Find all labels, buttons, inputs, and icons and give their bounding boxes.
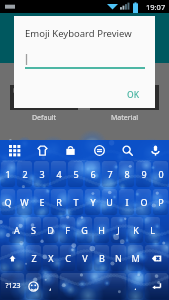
button[interactable]: C xyxy=(60,245,75,271)
staticText: Default xyxy=(32,113,57,123)
staticText: G xyxy=(81,224,88,236)
button[interactable]: Enter xyxy=(145,273,168,299)
staticText: , xyxy=(49,280,52,292)
button[interactable]: 5 xyxy=(68,161,83,187)
button[interactable]: G xyxy=(77,217,92,243)
staticText: 8 xyxy=(124,168,130,180)
button[interactable]: Z xyxy=(26,245,41,271)
staticText: H xyxy=(98,224,105,236)
button[interactable]: . xyxy=(128,273,143,299)
staticText: 7 xyxy=(107,168,113,180)
button[interactable]: N xyxy=(111,245,126,271)
staticText: 9 xyxy=(141,168,147,180)
button[interactable]: L xyxy=(145,217,160,243)
button[interactable]: ?123 xyxy=(1,273,24,299)
staticText: M xyxy=(131,252,140,264)
button[interactable]: E xyxy=(34,189,49,215)
staticText: J xyxy=(117,224,120,236)
staticText: K xyxy=(133,224,139,236)
staticText: 2 xyxy=(22,168,28,180)
button[interactable]: K xyxy=(128,217,143,243)
button[interactable]: GIF xyxy=(90,141,108,159)
staticText: 19:07 xyxy=(146,2,166,12)
button[interactable]: , xyxy=(43,273,58,299)
staticText: V xyxy=(82,252,88,264)
button[interactable]: U xyxy=(102,189,117,215)
button[interactable]: 9 xyxy=(136,161,151,187)
button[interactable]: A xyxy=(9,217,24,243)
button[interactable]: 2 xyxy=(17,161,32,187)
button[interactable]: I xyxy=(119,189,134,215)
staticText: 1 xyxy=(5,168,11,180)
button[interactable]: J xyxy=(111,217,126,243)
button[interactable]: M xyxy=(128,245,143,271)
button[interactable] xyxy=(90,85,159,110)
button[interactable]: 7 xyxy=(102,161,117,187)
button[interactable]: OK xyxy=(122,86,145,104)
button[interactable]: Store xyxy=(61,141,79,159)
button[interactable]: V xyxy=(77,245,92,271)
button[interactable]: 1 xyxy=(1,161,15,187)
staticText: 3 xyxy=(39,168,45,180)
button[interactable]: P xyxy=(153,189,168,215)
button[interactable]: Keyboard themes xyxy=(5,141,23,159)
button[interactable]: 8 xyxy=(119,161,134,187)
staticText: Emoji Keyboard Preview xyxy=(25,27,132,40)
button[interactable]: 6 xyxy=(85,161,100,187)
staticText: . xyxy=(134,280,137,292)
button[interactable]: F xyxy=(60,217,75,243)
staticText: I xyxy=(125,196,129,208)
button[interactable]: H xyxy=(94,217,109,243)
staticText: Y xyxy=(90,196,96,208)
staticText: A xyxy=(14,224,20,236)
button[interactable]: W xyxy=(17,189,32,215)
button[interactable]: Voice input xyxy=(146,141,164,159)
staticText: Material xyxy=(111,113,139,123)
staticText: C xyxy=(65,252,71,264)
staticText: 4 xyxy=(56,168,62,180)
button[interactable]: Emoji xyxy=(26,273,41,299)
staticText: N xyxy=(115,252,122,264)
button[interactable]: 3 xyxy=(34,161,49,187)
staticText: X xyxy=(48,252,54,264)
staticText: E xyxy=(39,196,45,208)
button[interactable]: Y xyxy=(85,189,100,215)
staticText: 0 xyxy=(158,168,164,180)
staticText: Z xyxy=(31,252,37,264)
button[interactable]: T xyxy=(68,189,83,215)
button[interactable]: Search xyxy=(118,141,136,159)
button[interactable]: 4 xyxy=(51,161,66,187)
button[interactable]: D xyxy=(43,217,58,243)
staticText: P xyxy=(158,196,164,208)
staticText: ?123 xyxy=(5,281,21,291)
button[interactable]: X xyxy=(43,245,58,271)
staticText: T xyxy=(73,196,79,208)
button[interactable]: 0 xyxy=(153,161,168,187)
button[interactable]: Space xyxy=(60,273,126,299)
button[interactable]: B xyxy=(94,245,109,271)
staticText: L xyxy=(150,224,155,236)
staticText: W xyxy=(20,196,29,208)
staticText: R xyxy=(56,196,62,208)
staticText: OK xyxy=(127,89,140,101)
staticText: B xyxy=(99,252,105,264)
button[interactable]: Q xyxy=(1,189,15,215)
staticText: F xyxy=(65,224,70,236)
button[interactable]: Shift xyxy=(1,245,24,271)
staticText: D xyxy=(47,224,54,236)
staticText: U xyxy=(106,196,113,208)
button[interactable]: O xyxy=(136,189,151,215)
button[interactable]: Backspace xyxy=(145,245,168,271)
button[interactable]: R xyxy=(51,189,66,215)
button[interactable]: S xyxy=(26,217,41,243)
staticText: 6 xyxy=(90,168,96,180)
staticText: Q xyxy=(4,196,12,208)
button[interactable] xyxy=(10,85,78,110)
staticText: S xyxy=(31,224,36,236)
button[interactable]: Stickers xyxy=(33,141,51,159)
staticText: 5 xyxy=(73,168,79,180)
staticText: O xyxy=(140,196,148,208)
